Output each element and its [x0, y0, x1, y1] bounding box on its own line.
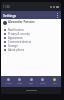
- staticText: Alexander Parsons: [8, 20, 35, 24]
- button[interactable]: More options: [54, 12, 60, 18]
- staticText: 11:30: [3, 5, 10, 9]
- button[interactable]: Files: [27, 76, 36, 87]
- staticText: Alerts: [40, 82, 46, 85]
- staticText: Storage: [8, 44, 18, 48]
- staticText: Home: [6, 82, 12, 85]
- staticText: Settings: [3, 13, 17, 18]
- staticText: Appearance: [8, 36, 23, 40]
- button[interactable]: Chats: [15, 76, 24, 87]
- button[interactable]: Privacy & security: [1, 32, 61, 36]
- staticText: Chats: [17, 82, 23, 85]
- staticText: Privacy & security: [8, 32, 30, 36]
- button[interactable]: Home: [4, 76, 13, 87]
- button[interactable]: About phone: [1, 48, 61, 52]
- button[interactable]: You: [50, 76, 59, 87]
- button[interactable]: Storage: [1, 44, 61, 48]
- button[interactable]: Alexander Parsons: [1, 20, 61, 26]
- staticText: Connected devices: [8, 40, 32, 44]
- button[interactable]: Alerts: [38, 76, 47, 87]
- button[interactable]: Notifications: [1, 28, 61, 32]
- button[interactable]: Appearance: [1, 36, 61, 40]
- staticText: You: [53, 82, 57, 85]
- staticText: Files: [29, 82, 34, 85]
- staticText: About phone: [8, 48, 25, 52]
- staticText: Notifications: [8, 28, 24, 32]
- button[interactable]: Connected devices: [1, 40, 61, 44]
